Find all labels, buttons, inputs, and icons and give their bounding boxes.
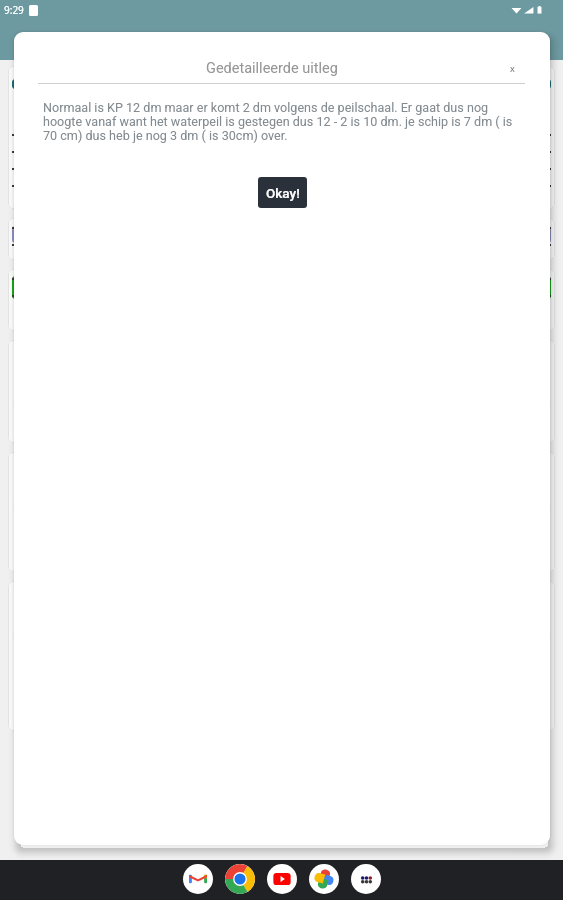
- staticText: Okay!: [266, 185, 300, 201]
- staticText: 9:29: [4, 3, 24, 17]
- button[interactable]: Chrome: [225, 864, 255, 894]
- staticText: Normaal is KP 12 dm maar er komt 2 dm vo…: [43, 100, 526, 143]
- button[interactable]: Gmail: [183, 864, 213, 894]
- button[interactable]: YouTube: [267, 864, 297, 894]
- button[interactable]: All apps: [351, 864, 381, 894]
- staticText: Gedetailleerde uitleg: [206, 60, 338, 77]
- button[interactable]: Okay!: [258, 177, 307, 208]
- button[interactable]: Close: [502, 58, 522, 78]
- button[interactable]: Photos: [309, 864, 339, 894]
- staticText: x: [510, 62, 515, 74]
